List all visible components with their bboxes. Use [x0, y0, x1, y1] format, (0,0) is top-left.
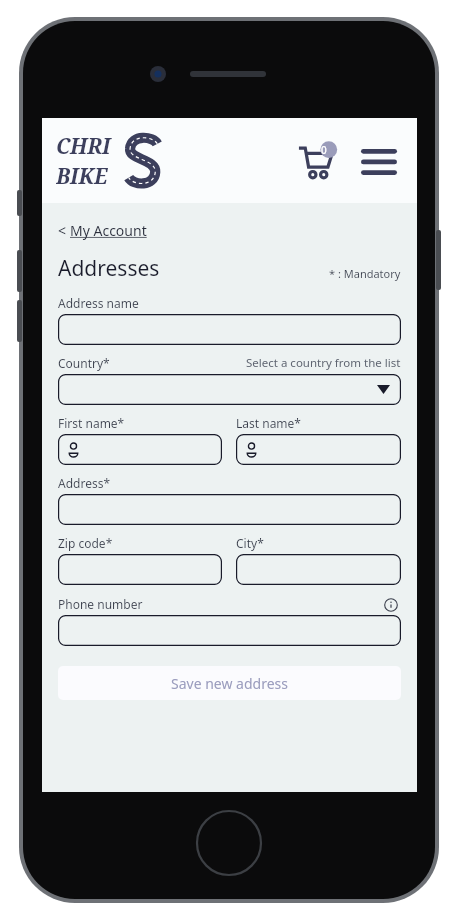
button[interactable] [236, 434, 401, 465]
staticText: Address name [58, 295, 139, 311]
staticText: BIKE [56, 162, 108, 190]
staticText: * : Mandatory [329, 266, 401, 281]
button[interactable] [236, 554, 401, 585]
button[interactable] [58, 554, 222, 585]
button[interactable] [58, 434, 222, 465]
staticText: First name* [58, 415, 125, 431]
button[interactable]: Cart, 0 items [291, 138, 343, 184]
button[interactable] [58, 615, 401, 646]
staticText: Select a country from the list [246, 355, 401, 371]
staticText: Addresses [58, 254, 160, 283]
staticText: Last name* [236, 415, 301, 431]
staticText: My Account [70, 221, 147, 240]
staticText: City* [236, 535, 264, 551]
staticText: Phone number [58, 596, 143, 612]
button[interactable] [58, 494, 401, 525]
staticText: Country* [58, 355, 110, 371]
button[interactable]: Save new address [58, 666, 401, 700]
staticText: Address* [58, 475, 111, 491]
button[interactable]: CHRI [56, 132, 162, 190]
button[interactable] [58, 314, 401, 345]
staticText: Zip code* [58, 535, 113, 551]
staticText: CHRI [56, 132, 111, 161]
button[interactable]: Phone number info [381, 595, 401, 615]
staticText: < [58, 221, 70, 240]
staticText: Save new address [171, 674, 288, 693]
staticText: 0 [321, 143, 327, 157]
button[interactable] [58, 374, 401, 405]
button[interactable]: < [58, 219, 147, 242]
button[interactable]: Menu [355, 138, 403, 184]
